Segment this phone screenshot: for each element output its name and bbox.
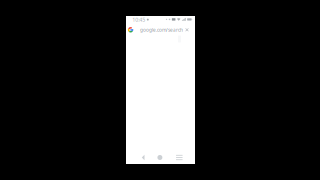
staticText: google.com/search	[140, 26, 183, 33]
button[interactable]: Recent apps	[172, 151, 186, 164]
button[interactable]: Back	[136, 151, 150, 164]
button[interactable]: Clear	[183, 26, 190, 33]
button[interactable]: Home	[153, 151, 167, 164]
staticText: 10:45	[132, 16, 145, 23]
